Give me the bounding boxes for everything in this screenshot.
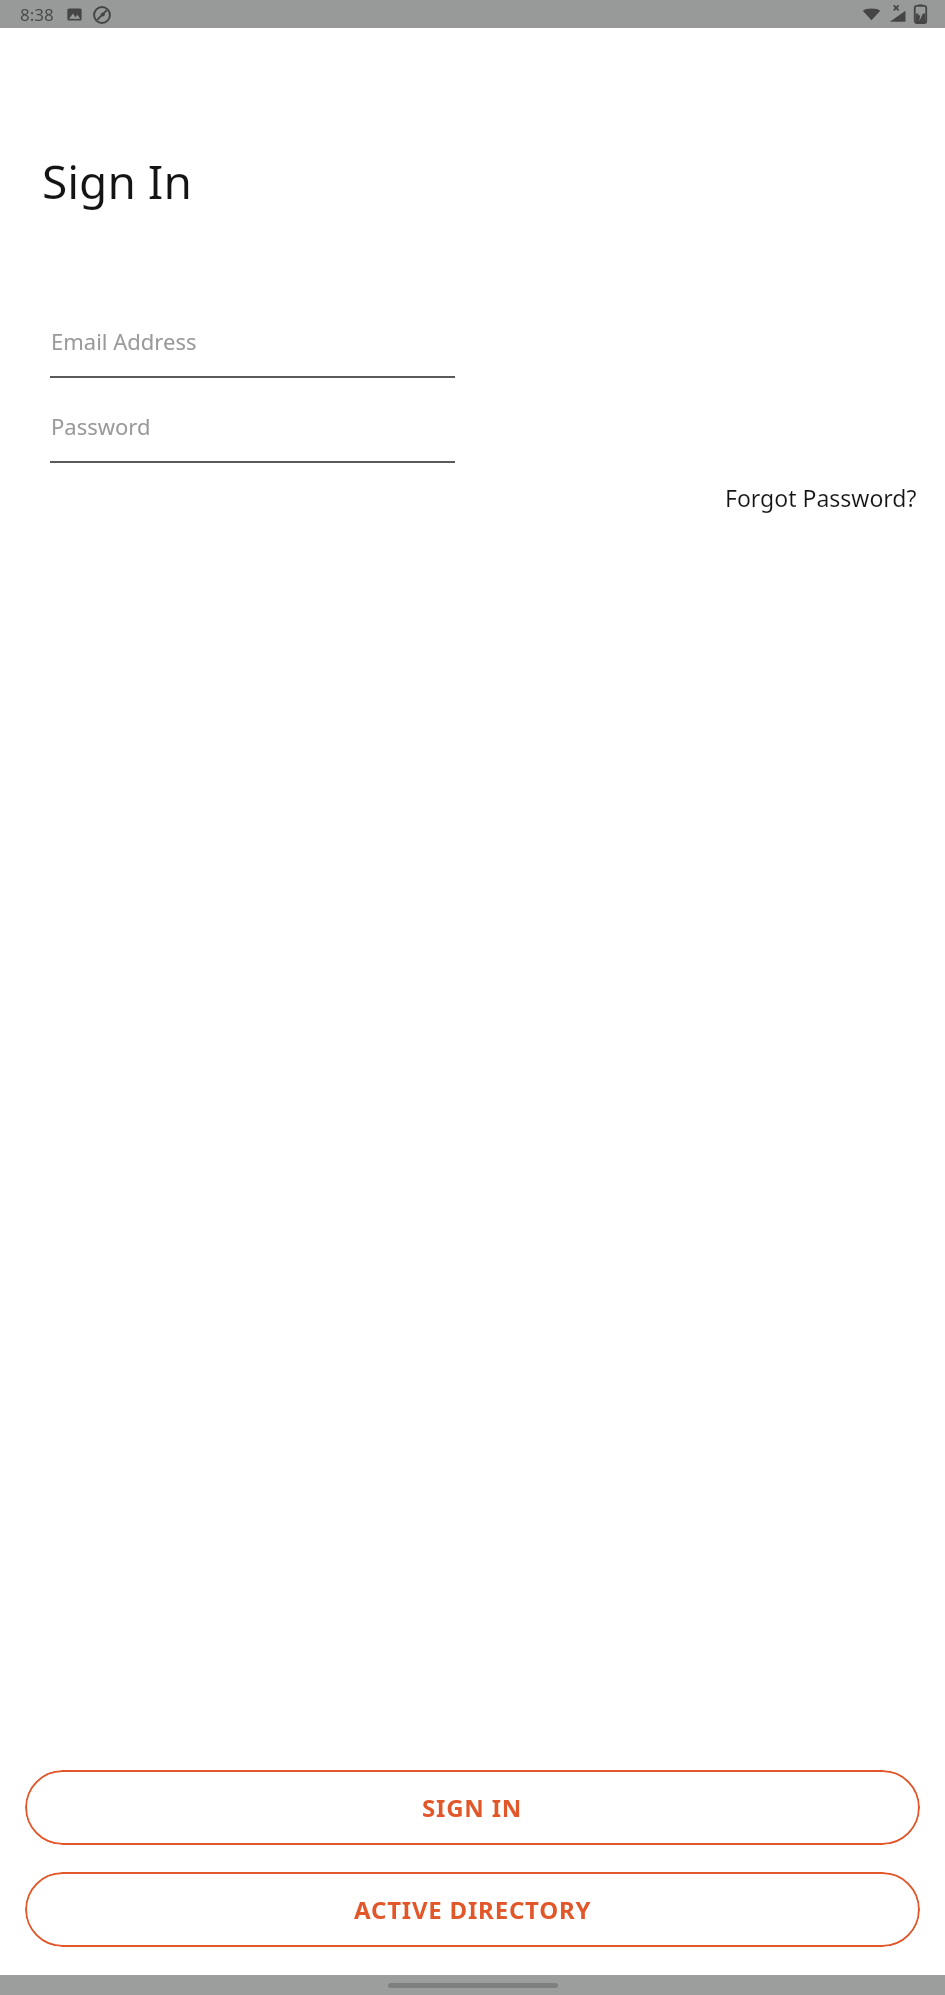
button[interactable]: Forgot Password? [721, 476, 921, 519]
button[interactable]: Password [25, 403, 455, 463]
staticText: Password [51, 411, 151, 441]
staticText: Email Address [51, 326, 197, 356]
button[interactable]: SIGN IN [25, 1770, 920, 1845]
staticText: ACTIVE DIRECTORY [354, 1893, 592, 1926]
staticText: Sign In [42, 150, 192, 213]
button[interactable]: ACTIVE DIRECTORY [25, 1872, 920, 1947]
staticText: Forgot Password? [725, 482, 917, 513]
staticText: SIGN IN [422, 1791, 523, 1824]
button[interactable]: Email Address [25, 318, 455, 378]
staticText: 8:38 [20, 3, 54, 26]
